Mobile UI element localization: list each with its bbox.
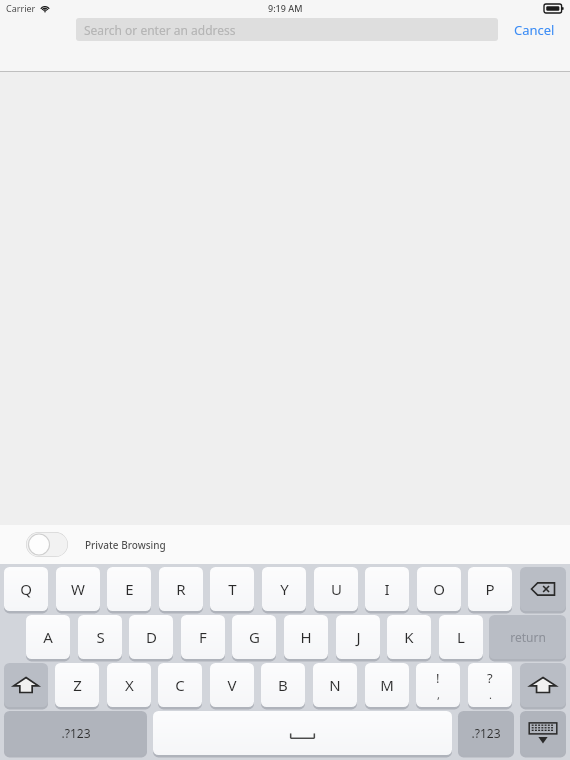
staticText: E [125, 579, 134, 599]
button[interactable]: Z [55, 663, 99, 707]
button[interactable]: P [468, 567, 512, 611]
staticText: S [96, 627, 105, 647]
button[interactable]: ? [468, 663, 512, 707]
staticText: H [300, 627, 312, 647]
button[interactable]: S [78, 615, 122, 659]
staticText: W [71, 579, 85, 599]
button[interactable]: Cancel [498, 18, 570, 41]
button[interactable]: ! [416, 663, 460, 707]
button[interactable]: H [284, 615, 328, 659]
button[interactable]: Q [4, 567, 48, 611]
button[interactable]: G [232, 615, 276, 659]
button[interactable]: .?123 [4, 711, 147, 755]
staticText: X [125, 675, 134, 695]
button[interactable]: Search or enter an address [76, 18, 498, 41]
button[interactable]: K [387, 615, 431, 659]
staticText: .?123 [61, 725, 91, 741]
staticText: , [437, 687, 440, 702]
button[interactable]: E [107, 567, 151, 611]
button[interactable]: Space [153, 711, 452, 755]
button[interactable]: A [26, 615, 70, 659]
staticText: V [227, 675, 237, 695]
button[interactable]: M [365, 663, 409, 707]
staticText: Z [73, 675, 82, 695]
staticText: Cancel [514, 21, 555, 39]
staticText: ! [436, 669, 440, 687]
button[interactable]: Y [262, 567, 306, 611]
button[interactable]: V [210, 663, 254, 707]
staticText: B [278, 675, 288, 695]
staticText: F [199, 627, 207, 647]
button[interactable]: X [107, 663, 151, 707]
button[interactable]: J [336, 615, 380, 659]
button[interactable]: Hide keyboard [520, 711, 566, 755]
staticText: return [510, 629, 546, 645]
button[interactable]: L [439, 615, 483, 659]
staticText: J [356, 627, 361, 647]
staticText: D [146, 627, 157, 647]
staticText: R [176, 579, 186, 599]
staticText: ? [487, 669, 493, 687]
staticText: Q [20, 579, 32, 599]
staticText: C [175, 675, 185, 695]
staticText: U [331, 579, 342, 599]
button[interactable]: B [261, 663, 305, 707]
staticText: L [457, 627, 465, 647]
button[interactable]: .?123 [458, 711, 514, 755]
button[interactable]: W [56, 567, 100, 611]
button[interactable]: Shift [520, 663, 566, 707]
staticText: Private Browsing [85, 538, 166, 552]
button[interactable]: U [314, 567, 358, 611]
staticText: 9:19 AM [268, 2, 303, 14]
button[interactable]: Shift [4, 663, 48, 707]
staticText: M [380, 675, 394, 695]
staticText: K [404, 627, 414, 647]
staticText: Y [280, 579, 289, 599]
staticText: G [249, 627, 260, 647]
button[interactable]: Private Browsing toggle, off [26, 532, 68, 557]
button[interactable]: return [489, 615, 566, 659]
button[interactable]: F [181, 615, 225, 659]
staticText: I [384, 579, 390, 599]
button[interactable]: N [313, 663, 357, 707]
staticText: Search or enter an address [84, 22, 236, 38]
staticText: .?123 [471, 725, 501, 741]
button[interactable]: O [417, 567, 461, 611]
button[interactable]: D [129, 615, 173, 659]
staticText: P [485, 579, 495, 599]
staticText: . [489, 687, 492, 702]
button[interactable]: T [210, 567, 254, 611]
staticText: Carrier [6, 2, 36, 14]
staticText: O [433, 579, 445, 599]
button[interactable]: C [158, 663, 202, 707]
button[interactable]: Backspace [520, 567, 566, 611]
staticText: N [329, 675, 341, 695]
button[interactable]: I [365, 567, 409, 611]
button[interactable]: R [159, 567, 203, 611]
staticText: A [43, 627, 53, 647]
staticText: T [228, 579, 237, 599]
